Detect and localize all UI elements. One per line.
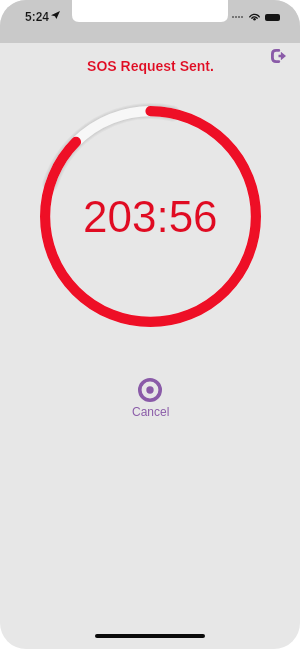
staticText: SOS Request Sent. xyxy=(87,58,214,74)
staticText: 203:56 xyxy=(83,192,218,241)
button[interactable]: Cancel xyxy=(131,378,169,418)
staticText: 5:24 xyxy=(25,10,50,23)
button[interactable]: Log out xyxy=(263,41,293,71)
staticText: Cancel xyxy=(132,405,170,418)
